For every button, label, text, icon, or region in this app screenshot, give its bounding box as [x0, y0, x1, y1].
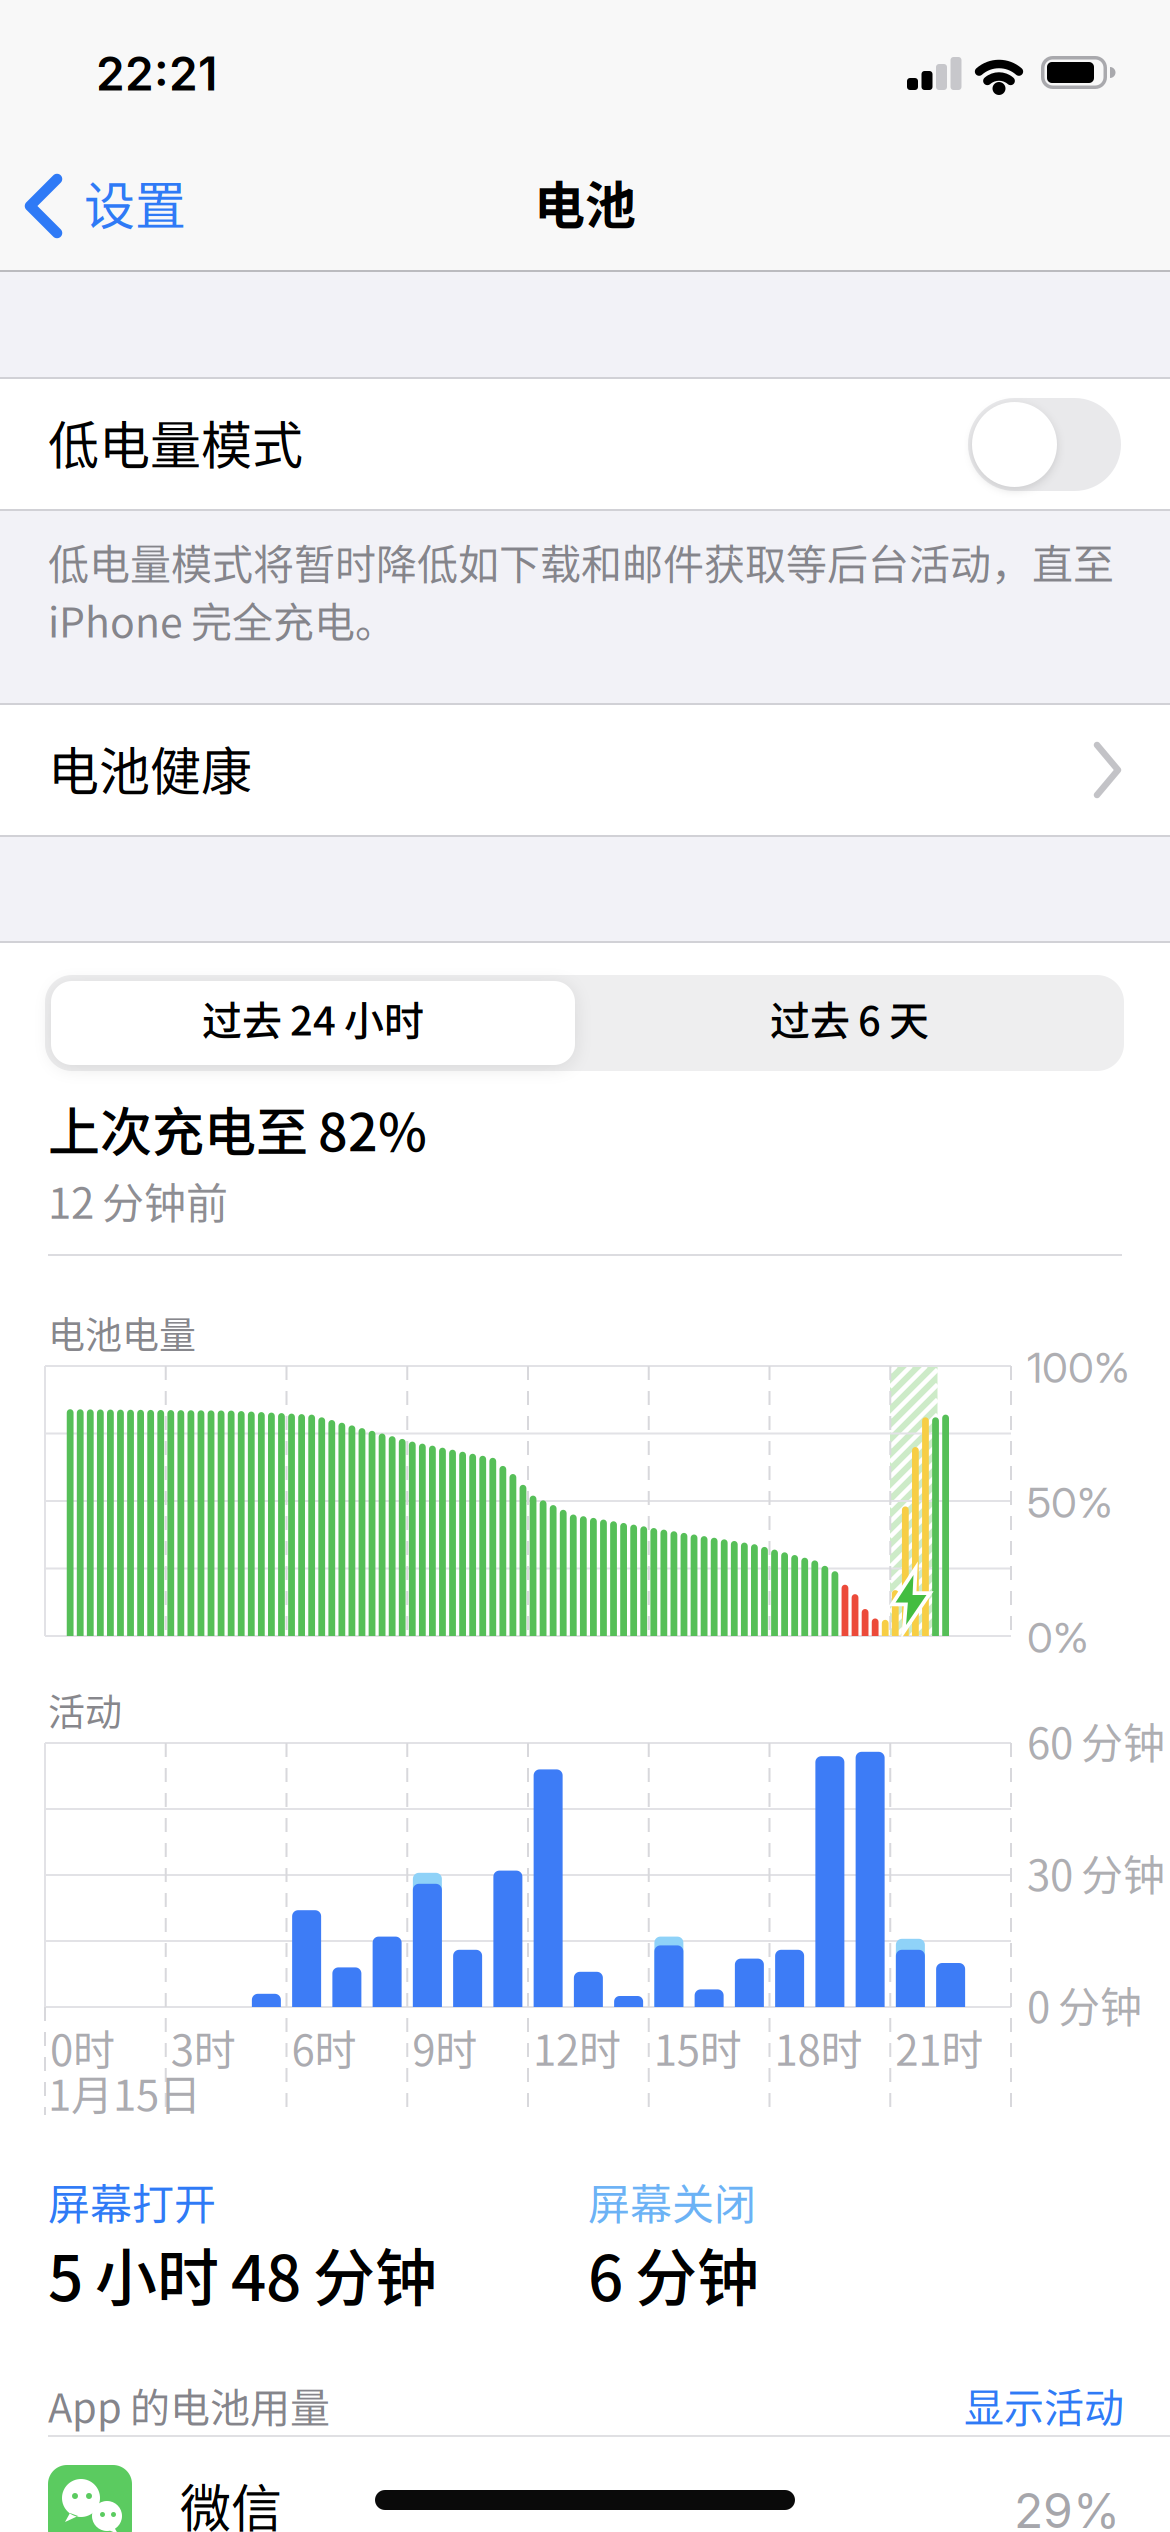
staticText: 30 分钟 [1027, 1842, 1165, 1903]
staticText: 上次充电至 82% [48, 1091, 427, 1166]
staticText: 60 分钟 [1027, 1710, 1165, 1771]
staticText: 过去 6 天 [770, 989, 929, 1047]
staticText: 设置 [84, 165, 186, 239]
staticText: 低电量模式 [48, 405, 303, 479]
staticText: 低电量模式将暂时降低如下载和邮件获取等后台活动，直至 [48, 532, 1114, 591]
staticText: 过去 24 小时 [202, 989, 424, 1047]
staticText: 0% [1027, 1612, 1089, 1663]
staticText: 15时 [654, 2017, 742, 2078]
staticText: 9时 [412, 2017, 477, 2078]
staticText: 1月15日 [48, 2062, 201, 2123]
staticText: 12 分钟前 [48, 1170, 228, 1231]
button[interactable]: 低电量模式 [968, 398, 1121, 491]
button[interactable]: 电池健康 [0, 705, 1170, 835]
staticText: 100% [1027, 1342, 1130, 1393]
staticText: 5 小时 48 分钟 [48, 2229, 437, 2319]
button[interactable]: 微信 [0, 2437, 1170, 2532]
staticText: 活动 [48, 1683, 122, 1737]
staticText: 18时 [774, 2017, 862, 2078]
staticText: 22:21 [96, 46, 217, 102]
staticText: 0时 [50, 2017, 115, 2078]
button[interactable]: 设置 [24, 173, 194, 239]
staticText: 6时 [291, 2017, 356, 2078]
staticText: 29% [1014, 2481, 1120, 2532]
staticText: 屏幕打开 [48, 2171, 216, 2232]
staticText: 屏幕关闭 [588, 2171, 756, 2232]
staticText: 显示活动 [964, 2376, 1124, 2434]
staticText: 电池健康 [48, 731, 252, 805]
button[interactable]: 过去 6 天 [575, 975, 1124, 1071]
staticText: 微信 [180, 2468, 282, 2532]
staticText: 电池电量 [48, 1306, 196, 1360]
staticText: 50% [1027, 1477, 1113, 1528]
staticText: 12时 [533, 2017, 621, 2078]
staticText: 电池 [534, 165, 636, 239]
button[interactable]: 过去 24 小时 [51, 981, 575, 1065]
staticText: 0 分钟 [1027, 1974, 1142, 2035]
staticText: 3时 [171, 2017, 236, 2078]
staticText: 21时 [895, 2017, 983, 2078]
staticText: 6 分钟 [588, 2229, 759, 2319]
button[interactable]: 显示活动 [48, 2376, 1124, 2434]
staticText: iPhone 完全充电。 [48, 590, 396, 649]
staticText: App 的电池用量 [48, 2376, 330, 2434]
